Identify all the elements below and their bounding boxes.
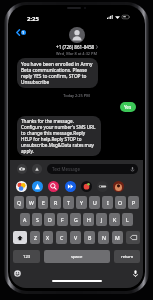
button[interactable]: X — [43, 231, 53, 244]
staticText: Text Message — [52, 166, 80, 172]
staticText: D — [48, 216, 52, 223]
staticText: return — [121, 254, 134, 260]
button[interactable]: J — [96, 213, 107, 226]
button[interactable]: Q — [14, 196, 24, 209]
button[interactable]: M — [112, 231, 123, 244]
button[interactable]: O — [115, 196, 126, 209]
staticText: P — [132, 199, 136, 206]
staticText: Q — [17, 199, 22, 206]
staticText: O — [118, 199, 123, 206]
staticText: J — [101, 216, 103, 223]
button[interactable]: S — [32, 213, 42, 226]
button[interactable]: I — [102, 196, 113, 209]
staticText: Wed, Mar 8 at 4:32 PM — [10, 51, 143, 56]
button[interactable]: K — [109, 213, 120, 226]
staticText: 1 — [22, 30, 25, 35]
button[interactable]: V — [70, 231, 81, 244]
staticText: 2:25 — [27, 15, 39, 23]
staticText: S — [36, 216, 39, 223]
staticText: Y — [80, 199, 83, 206]
button[interactable]: App — [48, 181, 59, 192]
staticText: space — [71, 254, 83, 260]
button[interactable]: D — [44, 213, 55, 226]
button[interactable]: T — [63, 196, 74, 209]
button[interactable]: W — [26, 196, 36, 209]
button[interactable]: App — [113, 181, 124, 192]
staticText: Yes — [124, 104, 132, 110]
button[interactable]: App — [97, 181, 108, 192]
staticText: L — [126, 216, 129, 223]
button[interactable]: space — [44, 250, 110, 263]
button[interactable]: F — [57, 213, 68, 226]
staticText: M — [115, 234, 120, 241]
button[interactable]: Camera — [17, 164, 27, 174]
button[interactable]: Y — [76, 196, 87, 209]
button[interactable]: Dictate — [131, 270, 139, 277]
staticText: Z — [34, 234, 37, 241]
staticText: C — [60, 234, 64, 241]
button[interactable]: C — [56, 231, 67, 244]
button[interactable]: Backspace — [126, 231, 140, 244]
staticText: E — [42, 199, 45, 206]
button[interactable]: G — [70, 213, 81, 226]
staticText: R — [54, 199, 58, 206]
button[interactable]: P — [128, 196, 139, 209]
button[interactable]: App — [16, 181, 27, 192]
button[interactable]: App — [81, 181, 92, 192]
staticText: Thanks for the message. Configure your n… — [21, 118, 96, 154]
button[interactable]: R — [50, 196, 61, 209]
button[interactable]: return — [114, 250, 140, 263]
staticText: T — [67, 199, 70, 206]
button[interactable]: Text Message — [47, 164, 138, 174]
staticText: F — [61, 216, 64, 223]
staticText: B — [88, 234, 92, 241]
staticText: G — [74, 216, 78, 223]
staticText: K — [113, 216, 117, 223]
button[interactable]: App — [65, 181, 76, 192]
staticText: N — [102, 234, 106, 241]
staticText: You have been enrolled in Army Beta comm… — [21, 61, 94, 85]
button[interactable]: Z — [30, 231, 40, 244]
button[interactable]: N — [98, 231, 109, 244]
button[interactable]: Back — [14, 27, 28, 38]
button[interactable]: 123 — [13, 250, 40, 263]
staticText: 123 — [23, 254, 31, 260]
staticText: I — [107, 199, 109, 206]
button[interactable]: App Store — [32, 164, 42, 174]
staticText: U — [93, 199, 97, 206]
staticText: X — [46, 234, 50, 241]
staticText: V — [74, 234, 78, 241]
button[interactable]: Shift — [13, 231, 27, 244]
button[interactable]: App — [32, 181, 43, 192]
button[interactable]: E — [38, 196, 48, 209]
button[interactable]: A — [20, 213, 30, 226]
staticText: +1 (726) 861-8458 — [56, 44, 95, 50]
button[interactable]: U — [89, 196, 100, 209]
button[interactable]: L — [122, 213, 133, 226]
staticText: H — [87, 216, 91, 223]
button[interactable]: B — [84, 231, 95, 244]
button[interactable]: H — [83, 213, 94, 226]
staticText: W — [29, 199, 34, 206]
button[interactable]: Emoji — [14, 270, 21, 277]
staticText: A — [23, 216, 27, 223]
staticText: Today 2:25 PM — [10, 93, 143, 98]
